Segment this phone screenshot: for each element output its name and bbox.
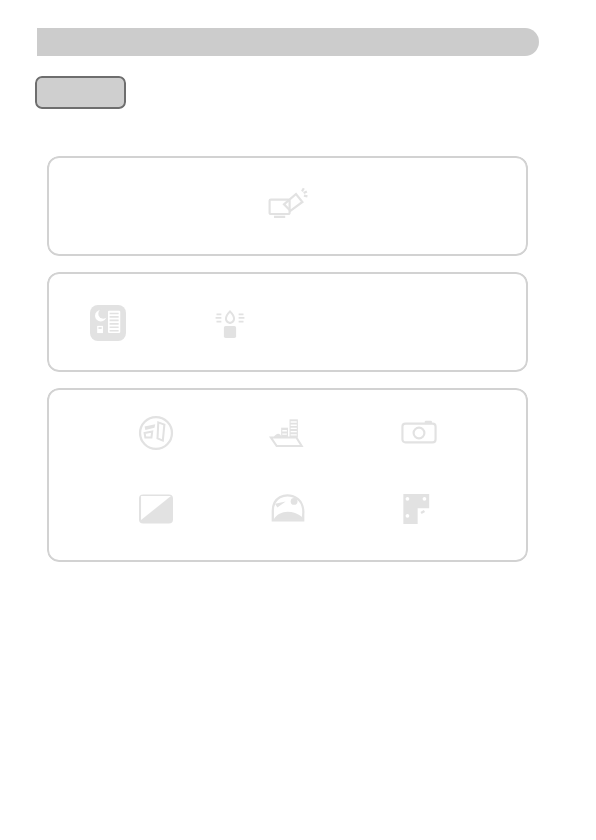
button[interactable]: Camera bbox=[396, 410, 442, 456]
button[interactable]: Contrast bbox=[133, 486, 179, 532]
button[interactable]: Action button bbox=[35, 76, 126, 109]
button[interactable]: Night list bbox=[85, 300, 131, 346]
button[interactable]: Night list bbox=[47, 272, 528, 372]
button[interactable]: Cast screen bbox=[47, 156, 528, 256]
button[interactable]: Color filter bbox=[133, 410, 179, 456]
button[interactable]: Title bar bbox=[37, 28, 539, 56]
button[interactable]: Photo bbox=[265, 486, 311, 532]
button[interactable]: City landscape bbox=[265, 410, 311, 456]
button[interactable]: Candle bbox=[207, 300, 253, 346]
button[interactable]: Cast screen bbox=[265, 183, 311, 229]
button[interactable]: Film bbox=[396, 486, 442, 532]
button[interactable]: Color filter bbox=[47, 388, 528, 562]
